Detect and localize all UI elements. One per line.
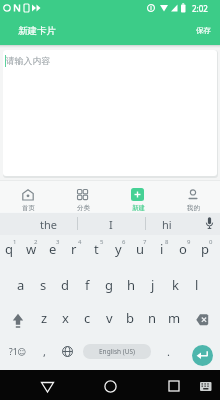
staticText: 保存 [196, 26, 211, 35]
button[interactable]: g [98, 275, 120, 295]
button[interactable] [57, 341, 77, 361]
button[interactable]: k [164, 275, 186, 295]
staticText: k [172, 276, 179, 294]
staticText: z [41, 309, 48, 327]
button[interactable] [190, 305, 218, 330]
staticText: h [127, 276, 136, 294]
staticText: r [71, 240, 77, 258]
staticText: g [105, 276, 113, 294]
staticText: v [106, 309, 113, 327]
staticText: n [148, 309, 157, 327]
staticText: 首页 [22, 204, 35, 212]
staticText: l [195, 276, 199, 294]
button[interactable] [0, 181, 55, 212]
button[interactable] [165, 181, 220, 212]
staticText: m [168, 309, 181, 327]
button[interactable]: c [76, 308, 98, 328]
button[interactable]: e [42, 239, 64, 259]
staticText: s [40, 276, 47, 294]
button[interactable]: t [85, 239, 107, 259]
staticText: 分类 [77, 204, 90, 212]
button[interactable] [2, 305, 30, 330]
staticText: o [179, 240, 187, 258]
staticText: f [85, 276, 90, 294]
staticText: 4 [78, 238, 82, 246]
staticText: x [62, 309, 69, 327]
button[interactable]: n [141, 308, 163, 328]
staticText: u [136, 240, 145, 258]
staticText: 6 [122, 238, 126, 246]
button[interactable] [196, 372, 220, 398]
button[interactable]: ?1☺ [5, 344, 31, 360]
staticText: 9 [187, 238, 191, 246]
button[interactable]: x [54, 308, 76, 328]
button[interactable]: f [76, 275, 98, 295]
button[interactable] [158, 372, 190, 398]
button[interactable]: m [163, 308, 185, 328]
button[interactable] [192, 345, 213, 366]
button[interactable]: i [151, 239, 173, 259]
staticText: 2 [34, 238, 38, 246]
staticText: t [94, 240, 99, 258]
staticText: c [84, 309, 91, 327]
button[interactable]: w [20, 239, 42, 259]
button[interactable]: o [172, 239, 194, 259]
staticText: I [109, 217, 113, 232]
button[interactable] [95, 372, 127, 398]
staticText: English (US) [99, 347, 136, 356]
staticText: d [61, 276, 69, 294]
button[interactable]: h [120, 275, 142, 295]
button[interactable]: English (US) [83, 344, 151, 359]
staticText: w [26, 240, 37, 258]
staticText: ?1☺ [9, 346, 27, 358]
button[interactable]: a [10, 275, 32, 295]
staticText: 2:02 [192, 3, 208, 14]
button[interactable]: d [54, 275, 76, 295]
button[interactable]: . [160, 343, 176, 359]
staticText: j [151, 276, 155, 294]
staticText: . [167, 344, 170, 359]
button[interactable]: y [107, 239, 129, 259]
button[interactable]: 保存 [190, 18, 216, 43]
staticText: 新建 [132, 204, 145, 212]
staticText: y [115, 240, 122, 258]
staticText: the [40, 217, 57, 232]
button[interactable]: v [98, 308, 120, 328]
staticText: a [17, 276, 25, 294]
button[interactable]: p [194, 239, 216, 259]
button[interactable]: , [36, 343, 52, 359]
staticText: 1 [13, 238, 17, 246]
button[interactable]: l [186, 275, 208, 295]
staticText: 新建卡片 [18, 25, 56, 37]
button[interactable]: j [142, 275, 164, 295]
staticText: 5 [100, 238, 104, 246]
button[interactable]: r [63, 239, 85, 259]
staticText: 请输入内容 [6, 56, 50, 67]
staticText: 0 [209, 238, 213, 246]
button[interactable]: hi [137, 213, 197, 235]
staticText: 8 [165, 238, 169, 246]
button[interactable]: u [129, 239, 151, 259]
staticText: q [5, 240, 13, 258]
button[interactable]: I [81, 213, 141, 235]
staticText: 3 [56, 238, 60, 246]
staticText: 我的 [187, 204, 200, 212]
button[interactable]: b [119, 308, 141, 328]
button[interactable]: s [32, 275, 54, 295]
button[interactable] [30, 372, 62, 398]
staticText: 7 [143, 238, 147, 246]
button[interactable] [198, 213, 220, 235]
staticText: b [126, 309, 134, 327]
staticText: p [201, 240, 209, 258]
staticText: i [160, 240, 164, 258]
button[interactable] [110, 181, 165, 212]
button[interactable]: the [18, 213, 78, 235]
button[interactable]: q [0, 239, 20, 259]
button[interactable] [55, 181, 110, 212]
staticText: , [43, 344, 46, 359]
button[interactable]: z [33, 308, 55, 328]
staticText: e [49, 240, 57, 258]
staticText: hi [162, 217, 172, 232]
